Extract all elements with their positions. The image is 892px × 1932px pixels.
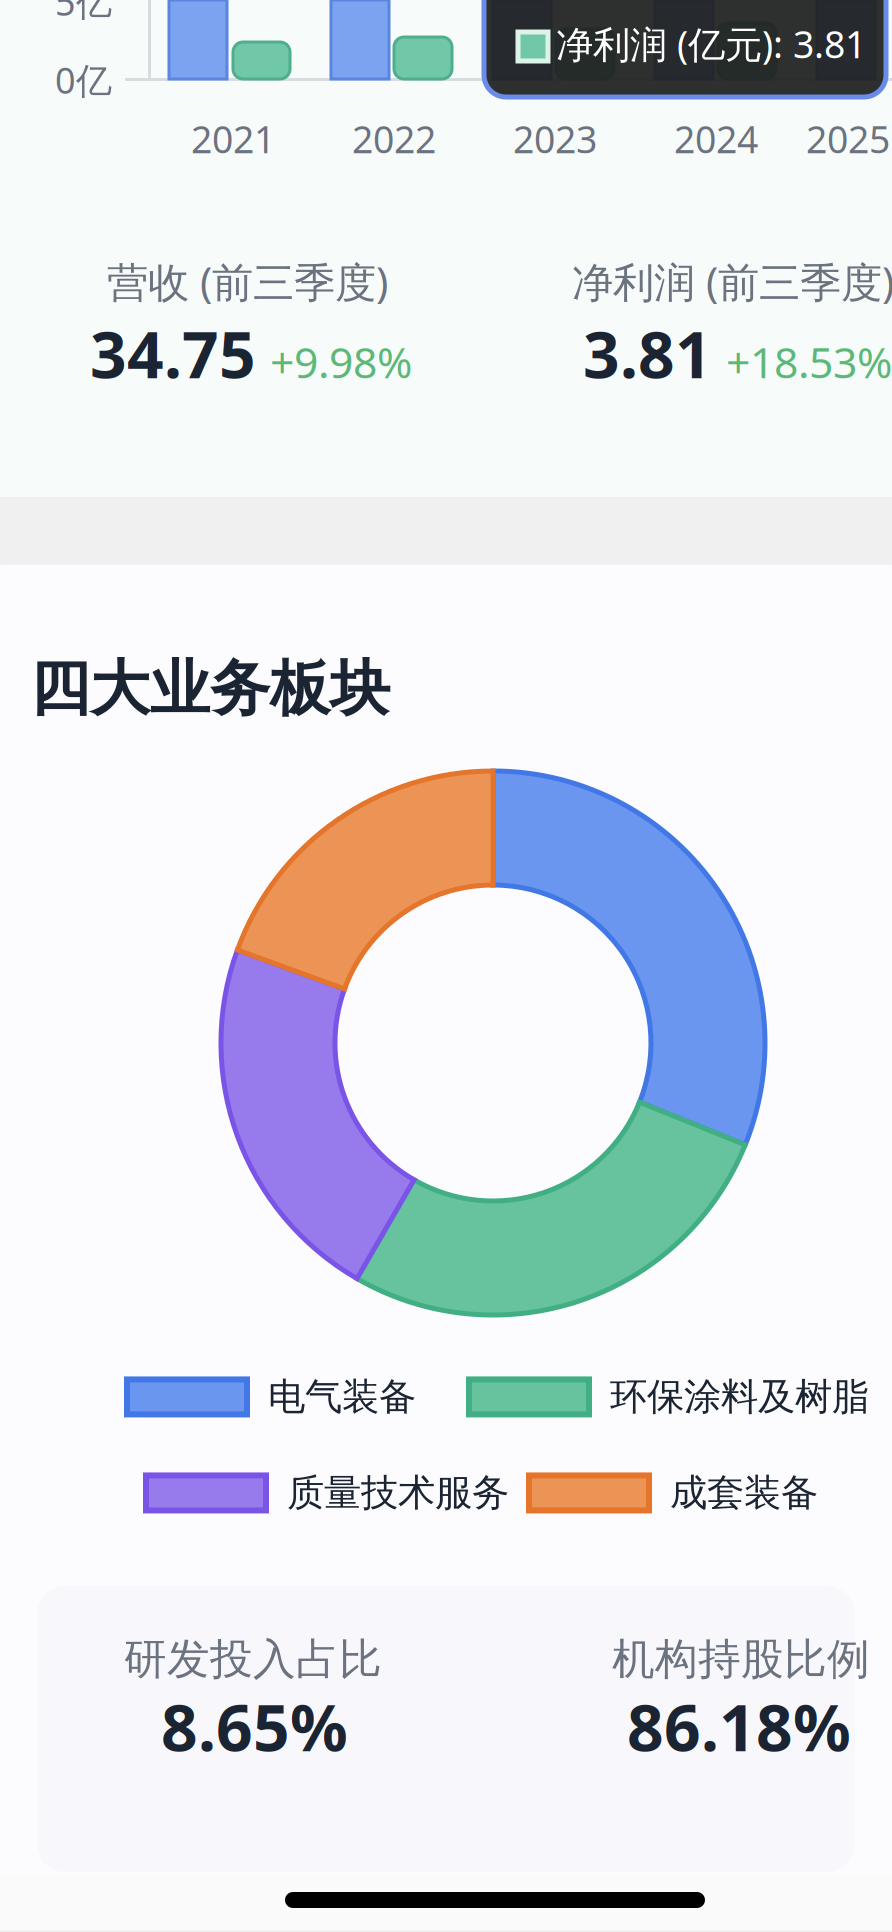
staticText: 3.81 xyxy=(583,311,712,396)
button[interactable]: 质量技术服务 xyxy=(143,1470,509,1516)
staticText: 净利润 (亿元): 3.81 xyxy=(556,19,866,69)
staticText: 34.75 xyxy=(90,311,256,396)
staticText: 8.65% xyxy=(161,1684,348,1769)
staticText: 2023 xyxy=(513,114,597,164)
staticText: 2025 xyxy=(806,114,890,164)
staticText: 0亿 xyxy=(55,56,112,104)
staticText: 质量技术服务 xyxy=(287,1470,509,1516)
button[interactable]: 环保涂料及树脂 xyxy=(466,1374,869,1420)
staticText: +18.53% xyxy=(726,333,892,390)
button[interactable]: 成套装备 xyxy=(526,1470,818,1516)
staticText: 机构持股比例 xyxy=(612,1633,870,1685)
staticText: 研发投入占比 xyxy=(124,1633,382,1685)
staticText: 5亿 xyxy=(55,0,112,26)
staticText: 2022 xyxy=(352,114,436,164)
staticText: 净利润 (前三季度) xyxy=(572,254,892,309)
staticText: 2024 xyxy=(674,114,758,164)
button[interactable]: 电气装备 xyxy=(124,1374,416,1420)
staticText: 环保涂料及树脂 xyxy=(610,1374,869,1420)
staticText: 成套装备 xyxy=(670,1470,818,1516)
staticText: 2021 xyxy=(191,114,275,164)
staticText: 营收 (前三季度) xyxy=(107,254,388,309)
staticText: +9.98% xyxy=(270,333,412,390)
staticText: 电气装备 xyxy=(268,1374,416,1420)
staticText: 四大业务板块 xyxy=(30,652,390,726)
staticText: 86.18% xyxy=(627,1684,851,1769)
